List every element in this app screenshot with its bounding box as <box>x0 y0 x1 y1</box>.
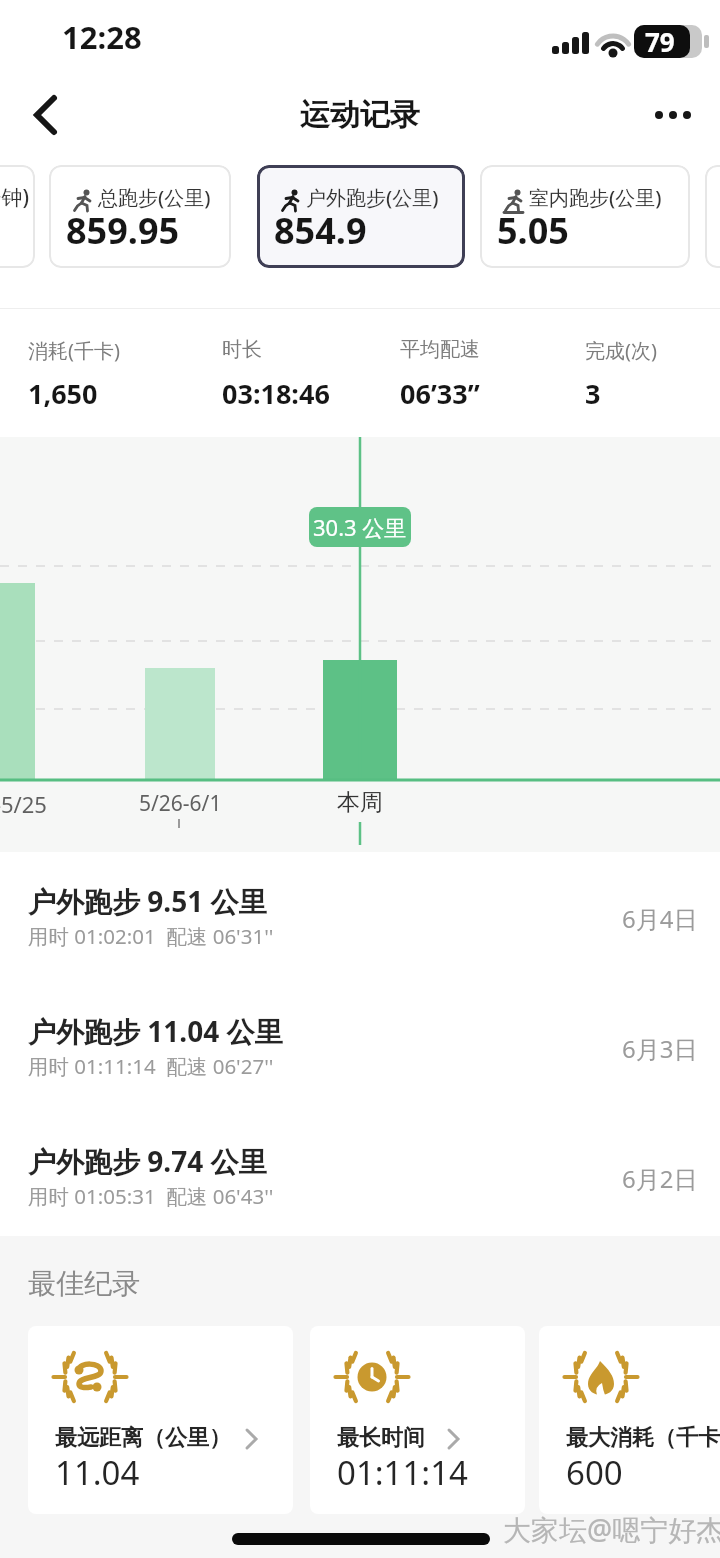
staticText: 最长时间 <box>337 1424 425 1452</box>
staticText: 30.3 公里 <box>313 512 407 542</box>
staticText: 最佳纪录 <box>28 1266 140 1301</box>
staticText: 6月3日 <box>622 1032 698 1062</box>
staticText: 运动记录 <box>300 96 420 134</box>
staticText: 本周 <box>337 788 383 817</box>
staticText: 室内跑步(公里) <box>529 184 662 211</box>
staticText: 用时 01:02:01 配速 06'31'' <box>28 922 274 950</box>
staticText: 5/19-5/25 <box>0 789 47 819</box>
staticText: 03:18:46 <box>222 375 330 412</box>
staticText: 户外跑步(公里) <box>306 184 439 211</box>
staticText: 600 <box>566 1450 623 1495</box>
staticText: 户外跑步 11.04 公里 <box>28 1012 283 1050</box>
staticText: 6月4日 <box>622 902 698 932</box>
staticText: 06’33” <box>400 375 480 412</box>
staticText: 用时 01:11:14 配速 06'27'' <box>28 1052 274 1080</box>
staticText: 用时 01:05:31 配速 06'43'' <box>28 1182 274 1210</box>
staticText: 5.05 <box>497 206 569 255</box>
staticText: 5/26-6/1 <box>139 789 222 818</box>
staticText: 6月2日 <box>622 1162 698 1192</box>
staticText: 最大消耗（千卡 <box>566 1424 720 1452</box>
staticText: 859.95 <box>66 206 180 255</box>
staticText: 01:11:14 <box>337 1450 468 1495</box>
staticText: 1,650 <box>28 375 98 412</box>
staticText: 大家坛@嗯宁好杰 <box>503 1510 720 1548</box>
staticText: 854.9 <box>274 206 367 255</box>
staticText: 消耗(千卡) <box>28 337 120 364</box>
staticText: 3 <box>585 375 601 412</box>
staticText: 12:28 <box>62 16 142 58</box>
staticText: 完成(次) <box>585 337 657 364</box>
staticText: 11.04 <box>55 1450 140 1495</box>
staticText: 时长(分钟) <box>0 183 30 212</box>
staticText: 户外跑步 9.74 公里 <box>28 1142 267 1180</box>
staticText: 平均配速 <box>400 337 480 362</box>
staticText: 户外跑步 9.51 公里 <box>28 882 267 920</box>
staticText: 时长 <box>222 337 262 362</box>
staticText: 最远距离（公里） <box>55 1424 231 1452</box>
staticText: 79 <box>645 24 675 59</box>
staticText: 总跑步(公里) <box>98 184 211 211</box>
